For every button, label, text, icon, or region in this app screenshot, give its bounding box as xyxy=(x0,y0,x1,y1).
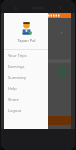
staticText: Share xyxy=(8,97,19,102)
staticText: Logout xyxy=(8,108,22,113)
button[interactable]: Logout xyxy=(4,105,48,116)
button[interactable]: Go online xyxy=(44,116,71,125)
staticText: Earnings xyxy=(8,64,25,69)
staticText: Tapan Pal xyxy=(17,38,36,43)
button[interactable]: Profile photo xyxy=(4,21,48,43)
button[interactable]: Help xyxy=(4,83,48,94)
button[interactable]: Earnings xyxy=(4,61,48,72)
button[interactable]: Summary xyxy=(4,72,48,83)
staticText: Your Trips xyxy=(8,53,27,58)
staticText: Summary xyxy=(8,75,27,80)
other: Profile photo xyxy=(19,21,34,36)
button[interactable]: Share xyxy=(4,94,48,105)
staticText: Help xyxy=(8,86,17,91)
button[interactable]: Your Trips xyxy=(4,50,48,61)
